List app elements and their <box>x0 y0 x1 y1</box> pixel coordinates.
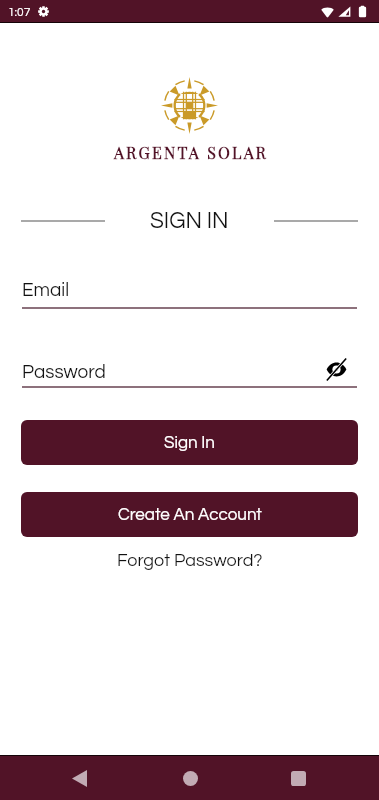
staticText: Password <box>22 362 106 382</box>
button[interactable]: Home <box>169 757 211 799</box>
staticText: Email <box>22 280 70 300</box>
button[interactable]: Forgot Password? <box>107 548 273 573</box>
button[interactable]: Sign In <box>21 420 358 465</box>
staticText: 1:07 <box>8 6 31 18</box>
staticText: Sign In <box>164 434 215 452</box>
staticText: SIGN IN <box>150 210 229 233</box>
button[interactable]: Recent apps <box>277 757 319 799</box>
staticText: Create An Account <box>118 506 262 524</box>
button[interactable]: Create An Account <box>21 492 358 537</box>
staticText: ARGENTA SOLAR <box>114 142 269 163</box>
staticText: Forgot Password? <box>117 551 263 570</box>
button[interactable]: Back <box>58 757 100 799</box>
button[interactable]: Show password <box>322 358 350 380</box>
